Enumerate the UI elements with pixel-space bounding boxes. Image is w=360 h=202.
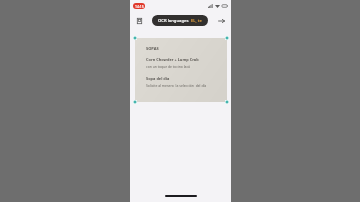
staticText: Sopa del día [146, 76, 170, 81]
button[interactable]: Crop top right [225, 36, 229, 40]
button[interactable]: OCR languages [152, 15, 208, 26]
button[interactable]: Crop bottom left [133, 100, 137, 104]
staticText: OCR languages [158, 18, 189, 24]
staticText: con un toque de tocino lacá [146, 64, 190, 69]
button[interactable]: Document [134, 15, 145, 26]
button[interactable]: Continue [216, 15, 227, 26]
staticText: EL, te [191, 18, 202, 24]
staticText: SOPAS [146, 46, 159, 51]
staticText: Solicite al mesero la selección del día [146, 83, 207, 88]
button[interactable]: Crop top left [133, 36, 137, 40]
staticText: Corn Chowder + Lump Crab [146, 57, 199, 62]
button[interactable]: SOPAS [135, 38, 227, 102]
staticText: 14:15 [135, 4, 144, 9]
button[interactable]: Crop bottom right [225, 100, 229, 104]
